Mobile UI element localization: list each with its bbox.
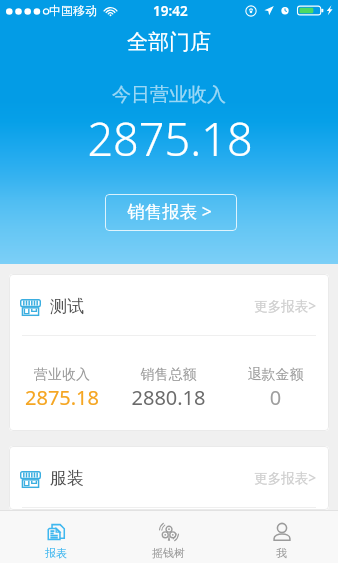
staticText: 0 <box>222 384 329 411</box>
staticText: 更多报表> <box>254 297 316 315</box>
button[interactable]: 报表 <box>0 510 112 563</box>
button[interactable]: 服装 <box>9 446 329 510</box>
staticText: 测试 <box>50 296 84 317</box>
staticText: 19:42 <box>153 2 188 20</box>
staticText: 中国移动 <box>49 3 97 18</box>
staticText: 今日营业收入 <box>0 83 338 107</box>
staticText: 2880.18 <box>115 384 222 411</box>
button[interactable]: 我 <box>225 510 338 563</box>
staticText: 更多报表> <box>254 469 316 487</box>
staticText: 摇钱树 <box>152 546 185 560</box>
button[interactable]: 销售报表 > <box>105 194 237 231</box>
staticText: 销售报表 > <box>127 199 212 223</box>
staticText: 我 <box>276 546 287 560</box>
button[interactable]: 摇钱树 <box>112 510 225 563</box>
staticText: 营业收入 <box>9 366 115 384</box>
staticText: 服装 <box>50 468 84 489</box>
staticText: 2875.18 <box>1 108 338 169</box>
staticText: 销售总额 <box>115 366 222 384</box>
button[interactable]: 测试 <box>9 274 329 431</box>
staticText: 退款金额 <box>222 366 329 384</box>
staticText: 2875.18 <box>9 384 115 411</box>
staticText: 全部门店 <box>0 29 338 55</box>
staticText: 报表 <box>45 546 67 560</box>
